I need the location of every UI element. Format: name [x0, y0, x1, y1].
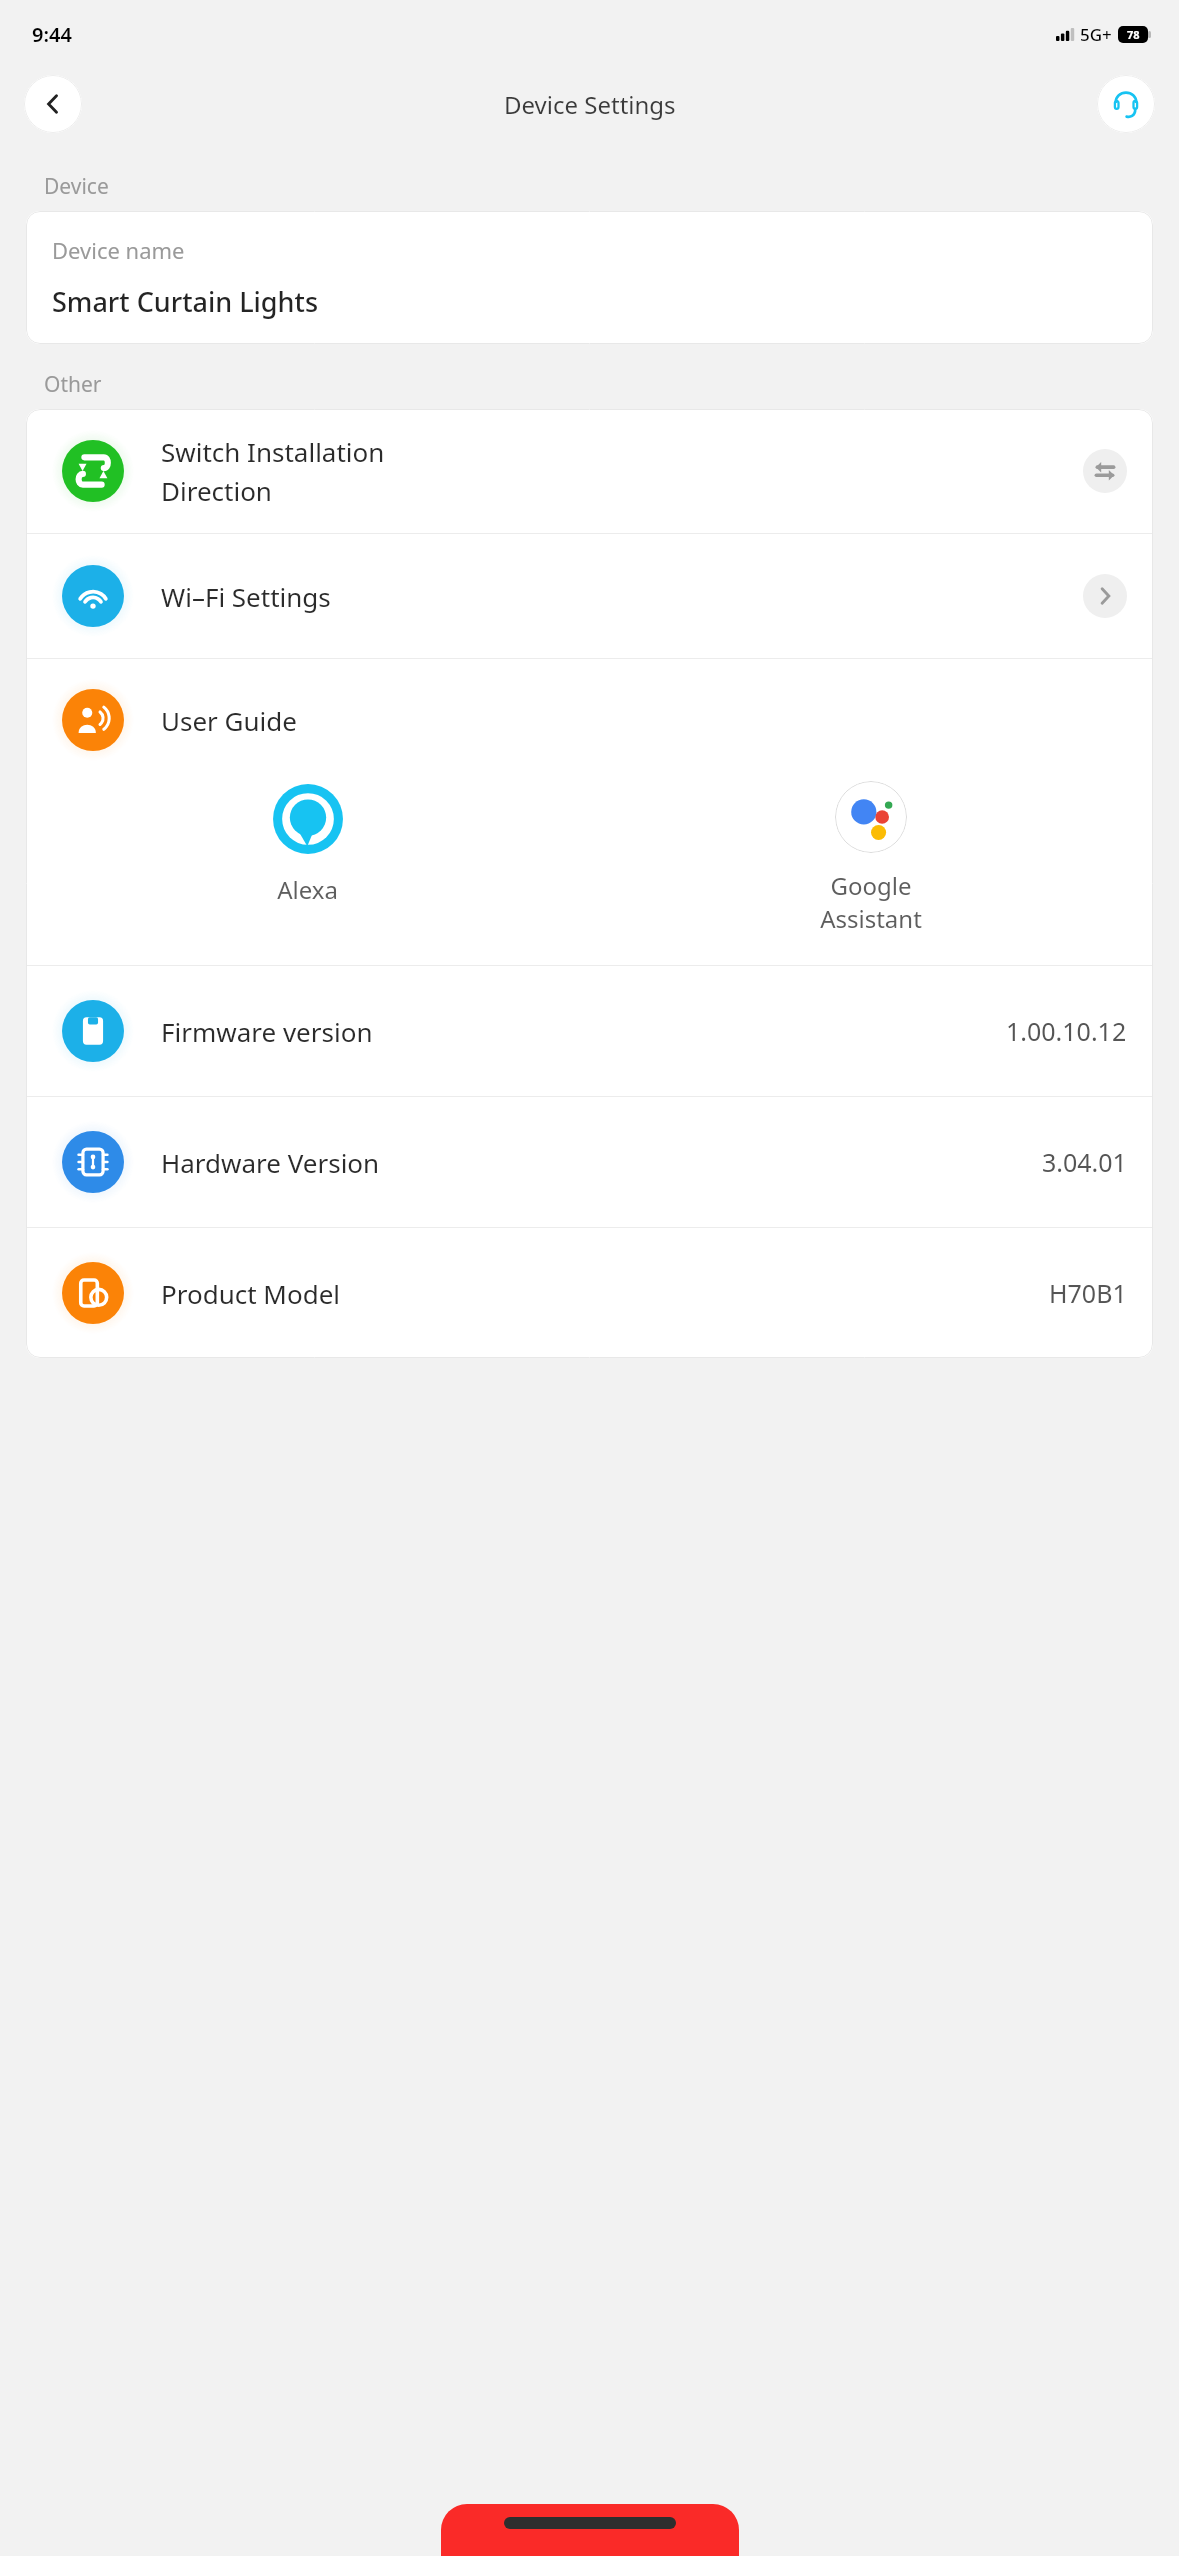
- staticText: Hardware Version: [161, 1145, 1042, 1180]
- button[interactable]: Hardware Version: [26, 1097, 1153, 1227]
- button[interactable]: Wi–Fi Settings: [26, 534, 1153, 658]
- button[interactable]: User Guide: [26, 659, 1153, 965]
- button[interactable]: Device name: [26, 211, 1153, 344]
- button[interactable]: Action: [1083, 574, 1127, 618]
- button[interactable]: Product Model: [26, 1228, 1153, 1358]
- button[interactable]: Back: [24, 75, 82, 133]
- staticText: H70B1: [1049, 1276, 1127, 1310]
- button[interactable]: Action: [1083, 449, 1127, 493]
- staticText: 1.00.10.12: [1006, 1014, 1127, 1048]
- staticText: Smart Curtain Lights: [52, 283, 319, 320]
- staticText: Alexa: [277, 873, 338, 906]
- staticText: Switch Installation Direction: [161, 434, 1083, 509]
- button[interactable]: Switch Installation Direction: [26, 409, 1153, 533]
- staticText: Wi–Fi Settings: [161, 579, 1083, 614]
- staticText: Device Settings: [504, 88, 676, 121]
- button[interactable]: Firmware version: [26, 966, 1153, 1096]
- button[interactable]: Google Assistant: [589, 781, 1153, 935]
- staticText: Google Assistant: [820, 869, 922, 935]
- button[interactable]: Support: [1097, 75, 1155, 133]
- staticText: Firmware version: [161, 1014, 1006, 1049]
- staticText: 3.04.01: [1042, 1145, 1127, 1179]
- staticText: Other: [44, 370, 102, 399]
- staticText: User Guide: [161, 703, 297, 738]
- staticText: Device: [44, 172, 109, 201]
- staticText: 5G+: [1080, 23, 1112, 46]
- staticText: Device name: [52, 235, 185, 265]
- staticText: 9:44: [32, 21, 72, 48]
- button[interactable]: Alexa: [26, 781, 589, 906]
- staticText: Product Model: [161, 1276, 1049, 1311]
- staticText: 78: [1127, 27, 1140, 42]
